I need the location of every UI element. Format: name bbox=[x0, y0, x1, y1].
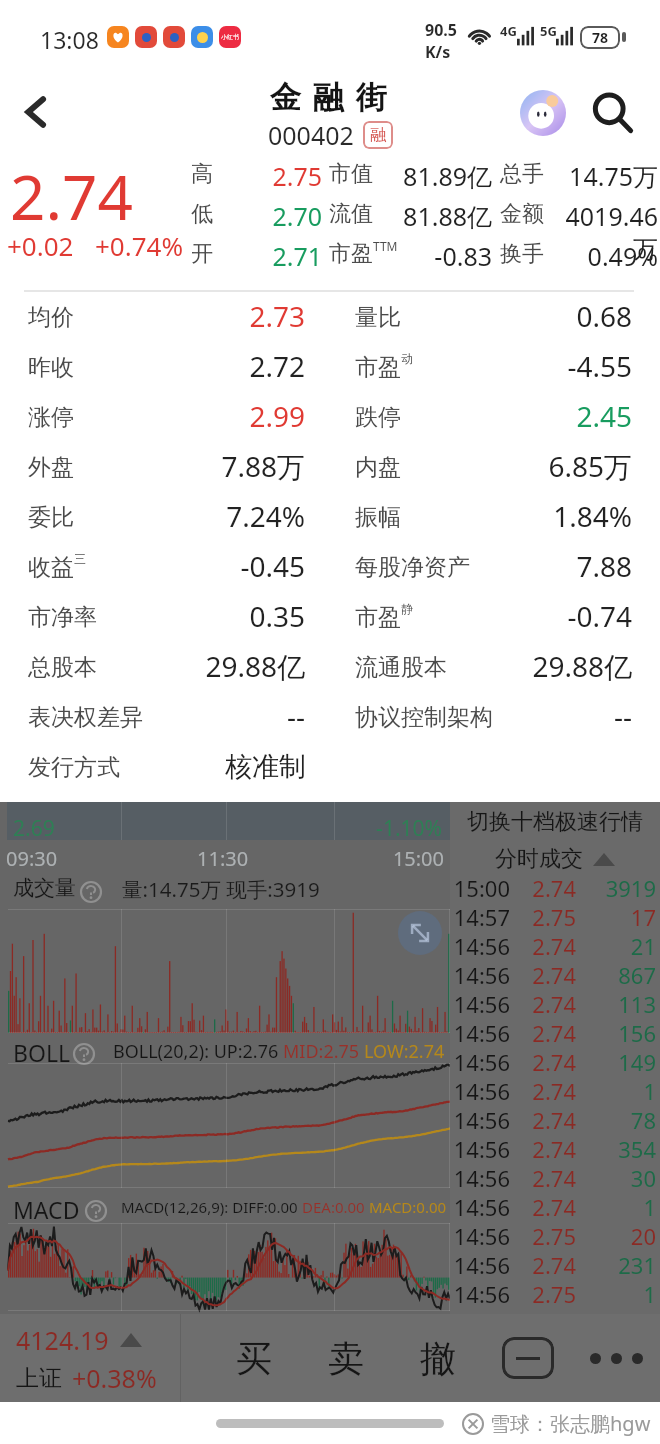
staticText: 14:56 bbox=[452, 960, 510, 990]
staticText: 市值 bbox=[329, 160, 373, 188]
staticText: -0.45 bbox=[105, 547, 305, 585]
staticText: 2.73 bbox=[105, 297, 305, 335]
staticText: 卖 bbox=[328, 1336, 364, 1381]
staticText: 1 bbox=[586, 1076, 656, 1106]
staticText: 81.88亿 bbox=[372, 199, 492, 233]
staticText: 协议控制架构 bbox=[355, 703, 493, 732]
staticText: 14:56 bbox=[452, 989, 510, 1019]
button[interactable]: 撤 bbox=[392, 1314, 484, 1402]
staticText: 78 bbox=[586, 1105, 656, 1135]
staticText: MACD(12,26,9): DIFF:0.00 bbox=[121, 1197, 302, 1217]
staticText: 1.84% bbox=[432, 497, 632, 535]
staticText: 29.88亿 bbox=[432, 647, 632, 685]
staticText: 融 bbox=[370, 125, 386, 145]
button[interactable]: Fullscreen bbox=[398, 911, 442, 955]
button[interactable]: More bbox=[572, 1314, 660, 1402]
staticText: 14:56 bbox=[452, 1076, 510, 1106]
staticText: -0.83 bbox=[372, 239, 492, 273]
staticText: 切换十档极速行情 bbox=[467, 808, 643, 836]
staticText: -- bbox=[432, 697, 632, 735]
staticText: 静 bbox=[401, 601, 413, 616]
staticText: 15:00 bbox=[324, 845, 444, 872]
staticText: 14:57 bbox=[452, 902, 510, 932]
staticText: 14:56 bbox=[452, 931, 510, 961]
staticText: 30 bbox=[586, 1163, 656, 1193]
staticText: 2.74 bbox=[518, 931, 576, 961]
staticText: 三 bbox=[74, 551, 86, 566]
staticText: 跌停 bbox=[355, 403, 401, 432]
staticText: 发行方式 bbox=[28, 753, 120, 782]
staticText: 2.74 bbox=[518, 1105, 576, 1135]
staticText: 09:30 bbox=[6, 845, 58, 872]
staticText: 开 bbox=[191, 240, 213, 268]
staticText: 2.74 bbox=[518, 1163, 576, 1193]
staticText: 2.74 bbox=[518, 960, 576, 990]
staticText: 14:56 bbox=[452, 1018, 510, 1048]
staticText: 收益 bbox=[28, 553, 74, 582]
staticText: 2.74 bbox=[518, 1047, 576, 1077]
staticText: 上证 bbox=[16, 1364, 62, 1393]
staticText: 2.74 bbox=[518, 1134, 576, 1164]
staticText: 总手 bbox=[500, 160, 544, 188]
staticText: 2.75 bbox=[518, 1279, 576, 1309]
staticText: 14:56 bbox=[452, 1134, 510, 1164]
staticText: 雪球：张志鹏hgw bbox=[490, 1410, 651, 1437]
staticText: 2.75 bbox=[518, 902, 576, 932]
staticText: 81.89亿 bbox=[372, 159, 492, 193]
staticText: -1.10% bbox=[282, 814, 442, 843]
staticText: 外盘 bbox=[28, 453, 74, 482]
button[interactable]: 4124.19 bbox=[0, 1314, 180, 1402]
button[interactable]: 卖 bbox=[300, 1314, 392, 1402]
staticText: 动 bbox=[401, 351, 413, 366]
staticText: 2.74 bbox=[518, 989, 576, 1019]
staticText: 21 bbox=[586, 931, 656, 961]
staticText: 78 bbox=[592, 28, 609, 47]
button[interactable]: 买 bbox=[208, 1314, 300, 1402]
staticText: 2.75 bbox=[212, 159, 322, 193]
staticText: 14:56 bbox=[452, 1163, 510, 1193]
staticText: 2.71 bbox=[212, 239, 322, 273]
staticText: 4019.46万 bbox=[548, 199, 658, 266]
staticText: 振幅 bbox=[355, 503, 401, 532]
button[interactable]: Back bbox=[8, 84, 64, 140]
staticText: BOLL bbox=[13, 1037, 71, 1068]
staticText: 2.75 bbox=[518, 1221, 576, 1251]
button[interactable]: Search bbox=[584, 84, 642, 142]
button[interactable]: Positions bbox=[484, 1314, 572, 1402]
staticText: LOW:2.74 bbox=[364, 1039, 445, 1064]
staticText: 4124.19 bbox=[16, 1323, 109, 1357]
staticText: 1 bbox=[586, 1279, 656, 1309]
button[interactable]: AI assistant bbox=[514, 84, 572, 142]
staticText: 均价 bbox=[28, 303, 74, 332]
staticText: -0.74 bbox=[432, 597, 632, 635]
staticText: 11:30 bbox=[197, 845, 249, 872]
staticText: 7.88万 bbox=[105, 447, 305, 485]
staticText: 2.74 bbox=[518, 1018, 576, 1048]
staticText: 7.24% bbox=[105, 497, 305, 535]
staticText: 20 bbox=[586, 1221, 656, 1251]
staticText: 14:56 bbox=[452, 1250, 510, 1280]
staticText: 分时成交 bbox=[495, 845, 583, 873]
staticText: 5G bbox=[540, 22, 557, 40]
staticText: 1 bbox=[586, 1192, 656, 1222]
staticText: 2.74 bbox=[10, 154, 134, 238]
staticText: 14.75万 bbox=[548, 159, 658, 193]
button[interactable]: 切换十档极速行情 bbox=[450, 802, 660, 842]
staticText: 金额 bbox=[500, 200, 544, 228]
staticText: 总股本 bbox=[28, 653, 97, 682]
staticText: 撤 bbox=[420, 1336, 456, 1381]
staticText: 成交量 bbox=[13, 875, 76, 901]
staticText: 买 bbox=[236, 1336, 272, 1381]
staticText: 小红书 bbox=[221, 33, 239, 41]
staticText: 涨停 bbox=[28, 403, 74, 432]
staticText: 000402 bbox=[268, 118, 354, 152]
staticText: 231 bbox=[586, 1250, 656, 1280]
staticText: MID:2.75 bbox=[283, 1039, 364, 1064]
staticText: 市盈 bbox=[329, 240, 373, 268]
staticText: 4G bbox=[500, 22, 517, 40]
staticText: 高 bbox=[191, 160, 213, 188]
button[interactable]: 分时成交 bbox=[450, 842, 660, 876]
staticText: 7.88 bbox=[432, 547, 632, 585]
staticText: 2.74 bbox=[518, 1250, 576, 1280]
staticText: 0.68 bbox=[432, 297, 632, 335]
